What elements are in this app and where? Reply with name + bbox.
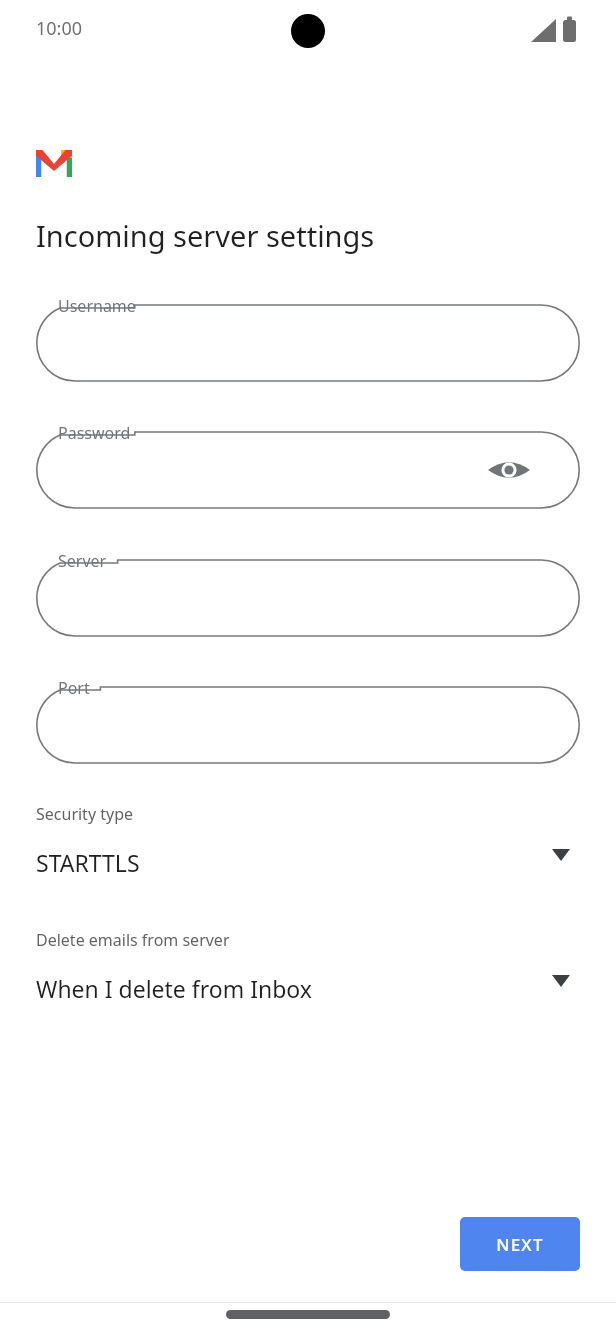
button[interactable]: Port — [36, 677, 580, 773]
staticText: NEXT — [496, 1233, 544, 1256]
staticText: Port — [58, 677, 90, 699]
button[interactable]: Delete emails from server — [36, 929, 580, 1025]
button[interactable]: Security type — [36, 803, 580, 899]
staticText: When I delete from Inbox — [36, 973, 312, 1004]
staticText: 10:00 — [36, 16, 83, 41]
staticText: Username — [58, 295, 136, 317]
staticText: Security type — [36, 803, 134, 825]
staticText: Delete emails from server — [36, 929, 230, 951]
button[interactable]: Username — [36, 295, 580, 391]
button[interactable]: Password — [36, 422, 580, 518]
button[interactable]: Show password — [488, 446, 536, 494]
staticText: STARTTLS — [36, 847, 140, 878]
button[interactable]: NEXT — [460, 1217, 580, 1271]
staticText: Password — [58, 422, 131, 444]
button[interactable]: Server — [36, 550, 580, 646]
staticText: Server — [58, 550, 107, 572]
staticText: Incoming server settings — [36, 216, 375, 255]
